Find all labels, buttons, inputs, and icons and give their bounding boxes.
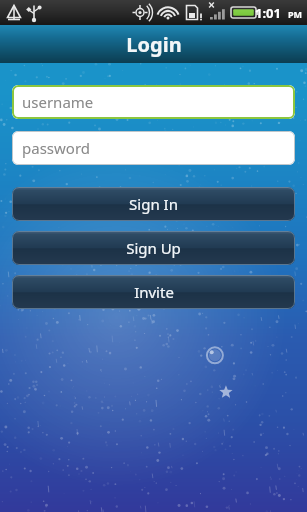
staticText: password xyxy=(22,138,90,158)
button[interactable]: Sign In xyxy=(12,187,295,221)
button[interactable]: Sign Up xyxy=(12,231,295,265)
button[interactable]: password xyxy=(12,131,295,165)
staticText: Invite xyxy=(134,282,174,302)
staticText: PM xyxy=(288,8,303,20)
staticText: username xyxy=(22,92,94,112)
staticText: Sign Up xyxy=(126,238,181,258)
staticText: Sign In xyxy=(129,194,178,214)
staticText: 1:01 xyxy=(255,4,281,22)
button[interactable]: username xyxy=(12,85,295,119)
staticText: Login xyxy=(126,31,182,58)
button[interactable]: Invite xyxy=(12,275,295,309)
